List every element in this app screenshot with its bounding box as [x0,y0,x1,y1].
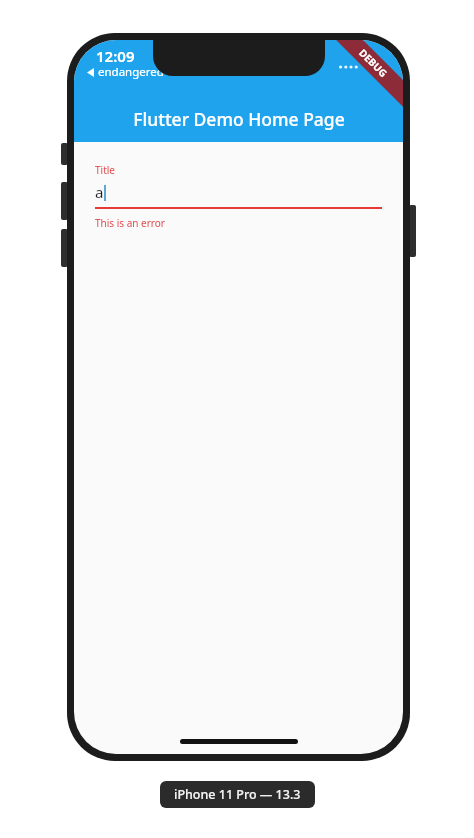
staticText: endangered [98,64,164,80]
button[interactable]: a [95,182,382,202]
button[interactable]: Back to endangered [87,64,164,80]
staticText: iPhone 11 Pro — 13.3 [174,786,301,803]
staticText: DEBUG [356,46,391,80]
staticText: Title [95,163,115,177]
staticText: 12:09 [96,46,135,66]
staticText: a [95,182,104,202]
staticText: This is an error [95,216,165,230]
other: Back to endangered [87,68,94,77]
button[interactable]: iPhone 11 Pro — 13.3 [160,781,315,808]
staticText: Flutter Demo Home Page [133,107,345,131]
